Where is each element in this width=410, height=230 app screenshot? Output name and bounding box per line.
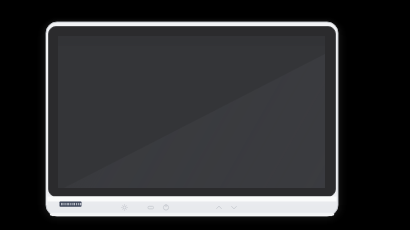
button[interactable]: Medical panel PC monitor product image	[0, 0, 410, 230]
